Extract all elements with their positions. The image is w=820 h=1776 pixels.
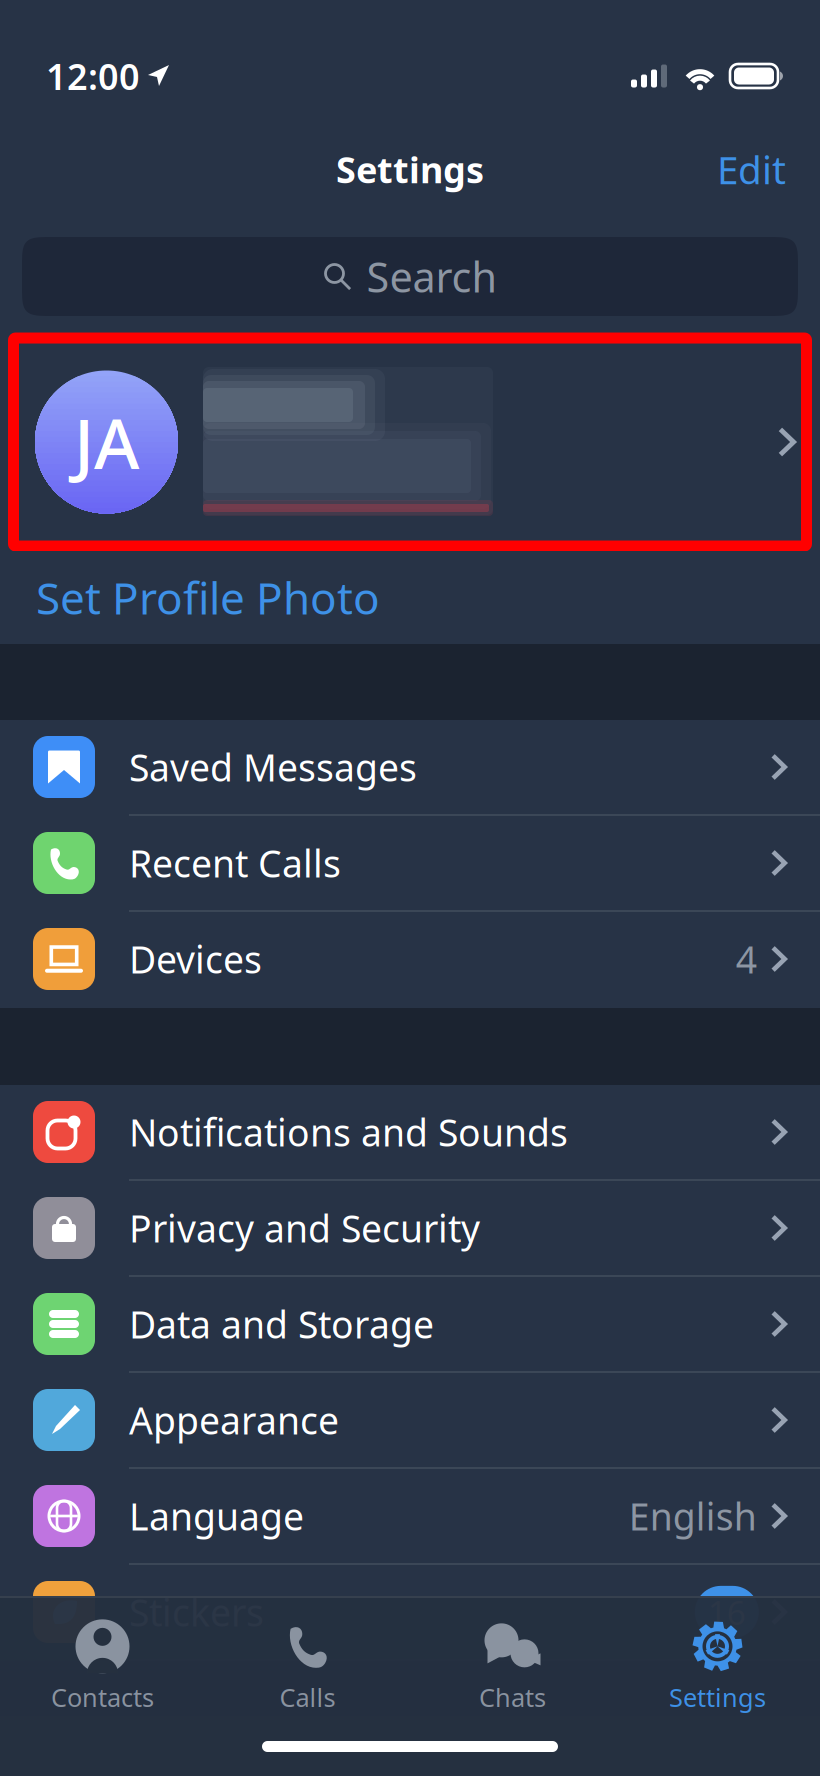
button[interactable]: Stickers: [0, 1565, 820, 1661]
staticText: Settings: [669, 1680, 766, 1714]
staticText: Language: [129, 1491, 304, 1541]
button[interactable]: Edit: [705, 136, 798, 203]
staticText: Devices: [129, 934, 262, 984]
button[interactable]: Devices: [0, 912, 820, 1008]
button[interactable]: Appearance: [0, 1373, 820, 1469]
button[interactable]: JA: [0, 333, 820, 551]
staticText: 4: [736, 934, 757, 984]
button[interactable]: Notifications and Sounds: [0, 1085, 820, 1181]
button[interactable]: Settings: [615, 1596, 820, 1718]
button[interactable]: Language: [0, 1469, 820, 1565]
staticText: Edit: [717, 144, 786, 195]
staticText: Stickers: [129, 1587, 264, 1637]
button[interactable]: Calls: [205, 1596, 410, 1718]
staticText: Notifications and Sounds: [129, 1107, 568, 1157]
staticText: Set Profile Photo: [36, 568, 380, 627]
staticText: Search: [366, 249, 497, 304]
staticText: 16: [708, 1590, 746, 1634]
staticText: Recent Calls: [129, 838, 341, 888]
staticText: Privacy and Security: [129, 1203, 480, 1253]
staticText: Settings: [336, 145, 484, 193]
button[interactable]: Saved Messages: [0, 720, 820, 816]
staticText: Chats: [479, 1680, 546, 1714]
staticText: English: [629, 1491, 757, 1541]
staticText: Data and Storage: [129, 1299, 434, 1349]
staticText: Saved Messages: [129, 742, 417, 792]
staticText: 12:00: [46, 52, 140, 100]
button[interactable]: Privacy and Security: [0, 1181, 820, 1277]
staticText: Appearance: [129, 1395, 339, 1445]
staticText: Calls: [279, 1680, 335, 1714]
staticText: Contacts: [51, 1680, 154, 1714]
staticText: JA: [74, 396, 139, 488]
button[interactable]: Data and Storage: [0, 1277, 820, 1373]
button[interactable]: Contacts: [0, 1596, 205, 1718]
button[interactable]: Chats: [410, 1596, 615, 1718]
button[interactable]: Search: [22, 237, 798, 316]
button[interactable]: Recent Calls: [0, 816, 820, 912]
button[interactable]: Set Profile Photo: [0, 551, 820, 644]
